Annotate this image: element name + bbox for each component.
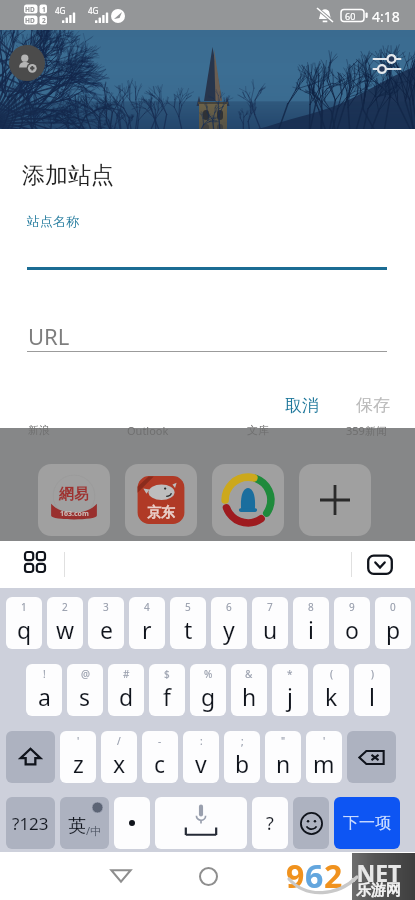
staticText: h — [242, 681, 257, 712]
staticText: - — [158, 734, 162, 748]
staticText: 新浪 — [28, 423, 50, 437]
button[interactable]: 保存 — [342, 387, 404, 424]
button[interactable]: Question mark — [252, 797, 288, 849]
staticText: i — [308, 614, 314, 645]
staticText: URL — [28, 321, 70, 351]
staticText: 9 — [349, 600, 355, 614]
staticText: 163.com — [60, 509, 89, 519]
button[interactable]: ' — [60, 731, 96, 783]
staticText: g — [201, 681, 216, 712]
staticText: 4:18 — [372, 7, 400, 26]
staticText: r — [142, 614, 152, 645]
staticText: HD — [25, 16, 35, 25]
button[interactable]: Emoji — [293, 797, 329, 849]
button[interactable]: Settings — [367, 44, 407, 84]
staticText: 359新闻 — [346, 423, 387, 438]
button[interactable]: 2 — [47, 597, 83, 649]
staticText: 添加站点 — [22, 161, 114, 190]
button[interactable]: Add shortcut — [299, 464, 371, 536]
button[interactable]: : — [183, 731, 219, 783]
staticText: : — [200, 734, 203, 748]
staticText: 站点名称 — [27, 213, 79, 229]
button[interactable]: ; — [224, 731, 260, 783]
button[interactable]: JD — [125, 464, 197, 536]
button[interactable]: 3 — [88, 597, 124, 649]
staticText: a — [38, 681, 51, 712]
button[interactable]: Back — [101, 855, 141, 895]
staticText: 9 — [286, 854, 305, 898]
staticText: / — [117, 734, 121, 748]
button[interactable]: Next — [334, 797, 400, 849]
button[interactable]: " — [265, 731, 301, 783]
button[interactable]: Symbols — [6, 797, 55, 849]
button[interactable]: 5 — [170, 597, 206, 649]
staticText: k — [325, 681, 338, 712]
staticText: p — [386, 614, 401, 645]
staticText: 1 — [21, 600, 27, 614]
button[interactable]: @ — [67, 664, 103, 716]
button[interactable]: 6 — [211, 597, 247, 649]
button[interactable]: Add account — [9, 45, 45, 81]
staticText: f — [163, 681, 171, 712]
staticText: u — [263, 614, 278, 645]
button[interactable]: Dot — [114, 797, 150, 849]
staticText: s — [79, 681, 91, 712]
staticText: 5 — [185, 600, 191, 614]
button[interactable]: 9 — [334, 597, 370, 649]
staticText: 60 — [345, 10, 356, 22]
button[interactable]: 7 — [252, 597, 288, 649]
button[interactable]: 163 mail — [38, 464, 110, 536]
staticText: 英 — [68, 815, 86, 838]
button[interactable]: 0 — [375, 597, 411, 649]
staticText: 1 — [42, 5, 46, 14]
staticText: 6 — [226, 600, 232, 614]
staticText: 4G — [55, 5, 66, 16]
staticText: 3 — [103, 600, 109, 614]
button[interactable]: 1 — [6, 597, 42, 649]
staticText: 2 — [324, 854, 343, 898]
staticText: 2 — [62, 600, 68, 614]
staticText: 2 — [42, 16, 46, 25]
button[interactable]: % — [190, 664, 226, 716]
button[interactable]: 8 — [293, 597, 329, 649]
button[interactable]: * — [272, 664, 308, 716]
button[interactable]: 360 browser — [212, 464, 284, 536]
staticText: " — [281, 734, 286, 748]
staticText: v — [195, 748, 207, 779]
staticText: 6 — [305, 854, 324, 898]
button[interactable]: 4 — [129, 597, 165, 649]
button[interactable]: Home — [188, 856, 228, 896]
staticText: HD — [25, 5, 35, 14]
staticText: ( — [330, 667, 333, 681]
button[interactable]: ' — [306, 731, 342, 783]
staticText: 乐游网 — [356, 881, 401, 900]
staticText: z — [73, 748, 84, 779]
staticText: m — [313, 748, 335, 779]
staticText: e — [100, 614, 113, 645]
staticText: ' — [77, 734, 80, 748]
button[interactable]: Shift — [6, 731, 55, 783]
button[interactable]: $ — [149, 664, 185, 716]
button[interactable]: 取消 — [271, 387, 333, 424]
staticText: ) — [371, 667, 374, 681]
button[interactable]: Space — [155, 797, 247, 849]
button[interactable]: Keyboard layouts — [17, 544, 53, 580]
button[interactable]: Language — [60, 797, 109, 849]
button[interactable]: ! — [26, 664, 62, 716]
button[interactable]: Backspace — [347, 731, 396, 783]
button[interactable]: ) — [354, 664, 390, 716]
button[interactable]: ( — [313, 664, 349, 716]
staticText: 8 — [308, 600, 314, 614]
staticText: Outlook — [127, 423, 169, 438]
staticText: * — [287, 667, 293, 681]
button[interactable]: & — [231, 664, 267, 716]
button[interactable]: # — [108, 664, 144, 716]
button[interactable]: / — [101, 731, 137, 783]
staticText: x — [113, 748, 126, 779]
staticText: y — [223, 614, 235, 645]
staticText: % — [204, 667, 213, 681]
button[interactable]: - — [142, 731, 178, 783]
button[interactable]: Hide keyboard — [362, 547, 398, 583]
staticText: @ — [81, 667, 90, 681]
staticText: $ — [164, 667, 170, 681]
